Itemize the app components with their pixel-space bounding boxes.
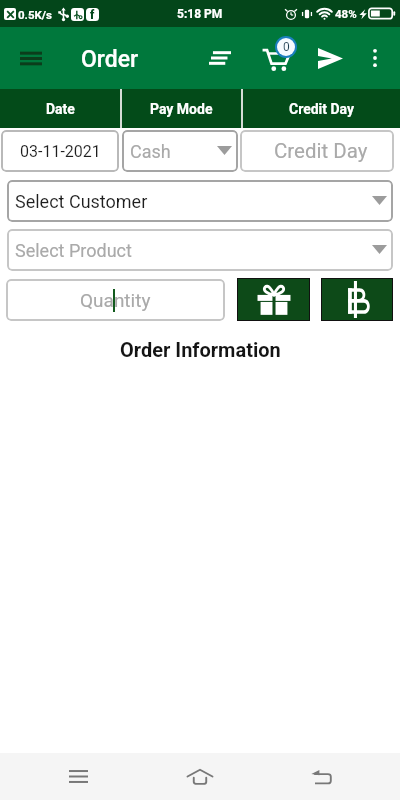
button[interactable]: More options xyxy=(356,39,394,77)
staticText: 0 xyxy=(283,40,290,54)
button[interactable]: Sort xyxy=(198,36,242,80)
button[interactable]: Open navigation menu xyxy=(9,36,53,80)
button[interactable]: Back xyxy=(297,753,345,800)
staticText: Credit Day xyxy=(289,101,355,117)
staticText: Credit Day xyxy=(274,139,368,163)
button[interactable]: Send xyxy=(308,36,352,80)
staticText: Pay Mode xyxy=(150,101,213,117)
staticText: Order Information xyxy=(120,338,281,361)
button[interactable]: Recent apps xyxy=(54,753,102,800)
staticText: 48% xyxy=(335,7,357,20)
staticText: 0.5K/s xyxy=(18,8,53,21)
button[interactable]: Date xyxy=(0,89,120,128)
staticText: f xyxy=(90,8,95,21)
button[interactable]: Gift xyxy=(238,279,309,320)
staticText: Order xyxy=(81,46,139,73)
button[interactable]: Select Customer xyxy=(7,180,393,222)
staticText: Quantity xyxy=(80,289,151,311)
staticText: Select Customer xyxy=(15,191,148,212)
button[interactable]: Home xyxy=(176,753,224,800)
button[interactable]: Select Product xyxy=(7,229,393,271)
button[interactable]: Pay Mode xyxy=(122,89,241,128)
button[interactable]: Quantity xyxy=(6,279,225,321)
staticText: 5:18 PM xyxy=(177,7,223,21)
staticText: Select Product xyxy=(15,240,132,261)
staticText: 03-11-2021 xyxy=(20,142,101,161)
button[interactable]: Credit Day xyxy=(240,130,394,172)
button[interactable]: Credit Day xyxy=(243,89,400,128)
button[interactable]: Cash xyxy=(122,130,238,172)
button[interactable]: Shopping cart xyxy=(253,35,299,81)
button[interactable]: Price xyxy=(322,279,392,320)
button[interactable]: 03-11-2021 xyxy=(1,130,119,172)
staticText: Cash xyxy=(130,141,171,162)
staticText: Date xyxy=(46,101,75,117)
